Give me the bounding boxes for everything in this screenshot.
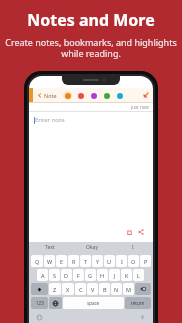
button[interactable]: Colour 2 bbox=[89, 91, 98, 100]
button[interactable]: Z bbox=[49, 283, 61, 295]
button[interactable]: Text bbox=[29, 242, 71, 253]
button[interactable]: S bbox=[49, 269, 60, 281]
button[interactable]: Q bbox=[31, 255, 43, 267]
button[interactable]: Colour 3 bbox=[102, 91, 111, 100]
staticText: L bbox=[137, 272, 140, 279]
staticText: B bbox=[103, 286, 107, 293]
staticText: S bbox=[53, 272, 57, 279]
staticText: T bbox=[84, 258, 88, 265]
staticText: Y bbox=[96, 258, 100, 265]
button[interactable]: U bbox=[104, 255, 115, 267]
staticText: E bbox=[60, 258, 64, 265]
button[interactable]: Edit bbox=[142, 91, 150, 99]
button[interactable]: Note bbox=[36, 92, 58, 99]
staticText: I bbox=[132, 244, 134, 251]
button[interactable]: V bbox=[87, 283, 98, 295]
button[interactable]: G bbox=[85, 269, 96, 281]
button[interactable]: J bbox=[109, 269, 120, 281]
button[interactable]: Dictate bbox=[132, 312, 153, 323]
button[interactable]: Colour 1 bbox=[76, 91, 85, 100]
button[interactable]: R bbox=[68, 255, 79, 267]
staticText: Okay bbox=[86, 244, 98, 251]
staticText: N bbox=[114, 286, 119, 293]
staticText: U bbox=[107, 258, 112, 265]
button[interactable]: O bbox=[128, 255, 139, 267]
staticText: Text bbox=[45, 244, 55, 251]
button[interactable]: Delete bbox=[125, 228, 133, 236]
button[interactable]: M bbox=[123, 283, 134, 295]
staticText: Z bbox=[53, 286, 57, 293]
staticText: J bbox=[114, 272, 116, 279]
staticText: X bbox=[66, 286, 70, 293]
staticText: Notes and More bbox=[27, 9, 155, 31]
button[interactable]: W bbox=[44, 255, 55, 267]
button[interactable]: I bbox=[116, 255, 127, 267]
button[interactable]: Colour 0 bbox=[63, 91, 72, 100]
button[interactable]: H bbox=[97, 269, 108, 281]
button[interactable]: L bbox=[133, 269, 144, 281]
staticText: Enter note bbox=[35, 116, 65, 124]
staticText: A bbox=[41, 272, 45, 279]
button[interactable]: Y bbox=[92, 255, 103, 267]
button[interactable]: Change keyboard bbox=[49, 297, 62, 309]
staticText: K bbox=[125, 272, 129, 279]
button[interactable]: X bbox=[62, 283, 74, 295]
staticText: just now bbox=[131, 104, 149, 110]
button[interactable]: D bbox=[61, 269, 72, 281]
staticText: C bbox=[79, 286, 83, 293]
button[interactable]: C bbox=[75, 283, 86, 295]
button[interactable]: F bbox=[73, 269, 84, 281]
staticText: G bbox=[88, 272, 93, 279]
button[interactable]: return bbox=[125, 297, 151, 309]
button[interactable]: Backspace bbox=[135, 283, 151, 295]
staticText: V bbox=[91, 286, 95, 293]
staticText: H bbox=[100, 272, 105, 279]
button[interactable]: Colour 4 bbox=[115, 91, 124, 100]
staticText: R bbox=[72, 258, 76, 265]
staticText: space bbox=[87, 300, 100, 306]
button[interactable]: I bbox=[112, 242, 153, 253]
staticText: 123 bbox=[36, 300, 44, 306]
button[interactable]: P bbox=[140, 255, 151, 267]
staticText: M bbox=[126, 286, 131, 293]
staticText: Note bbox=[44, 92, 57, 99]
staticText: F bbox=[77, 272, 80, 279]
button[interactable]: 123 bbox=[31, 297, 48, 309]
staticText: Create notes, bookmarks, and highlights … bbox=[5, 36, 177, 60]
staticText: return bbox=[131, 300, 145, 306]
staticText: Q bbox=[35, 258, 40, 265]
button[interactable]: Share bbox=[137, 228, 145, 236]
button[interactable]: K bbox=[121, 269, 132, 281]
staticText: W bbox=[47, 258, 53, 265]
button[interactable]: N bbox=[111, 283, 122, 295]
button[interactable]: Okay bbox=[71, 242, 112, 253]
button[interactable]: space bbox=[63, 297, 124, 309]
button[interactable]: Shift bbox=[31, 283, 48, 295]
staticText: O bbox=[131, 258, 136, 265]
button[interactable]: B bbox=[99, 283, 110, 295]
button[interactable]: E bbox=[56, 255, 67, 267]
button[interactable]: T bbox=[80, 255, 91, 267]
button[interactable]: A bbox=[37, 269, 48, 281]
staticText: D bbox=[64, 272, 69, 279]
staticText: I bbox=[121, 258, 123, 265]
staticText: P bbox=[144, 258, 148, 265]
button[interactable]: Emoji bbox=[29, 312, 49, 323]
